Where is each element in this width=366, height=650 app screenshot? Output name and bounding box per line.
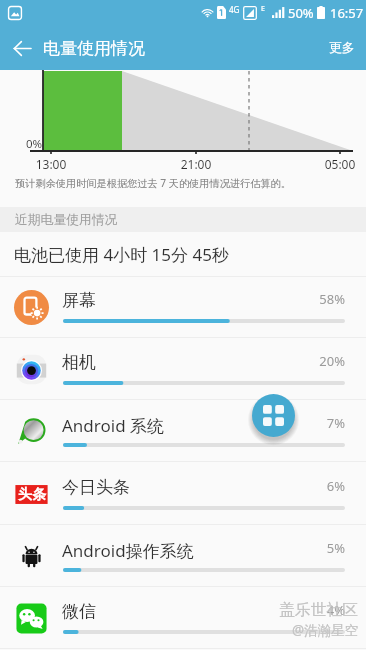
button[interactable]: 微信 (0, 587, 366, 649)
staticText: @浩瀚星空 (292, 621, 359, 639)
staticText: 21:00 (166, 156, 226, 172)
staticText: 4G (229, 4, 240, 15)
staticText: 05:00 (310, 156, 366, 172)
staticText: 5% (300, 539, 345, 557)
button[interactable]: 更多 (315, 26, 366, 70)
staticText: 4% (300, 601, 345, 619)
button[interactable]: 屏幕 (0, 276, 366, 338)
staticText: 58% (300, 290, 345, 308)
button[interactable]: Back (0, 26, 44, 70)
staticText: Android操作系统 (62, 539, 194, 562)
staticText: 微信 (62, 601, 96, 622)
button[interactable]: Apps (252, 394, 295, 437)
staticText: 7% (300, 414, 345, 432)
button[interactable]: Android操作系统 (0, 525, 366, 587)
staticText: 50% (288, 4, 314, 22)
staticText: 20% (300, 352, 345, 370)
staticText: 相机 (62, 352, 96, 373)
button[interactable]: 头条 (0, 463, 366, 525)
staticText: 电量使用情况 (43, 38, 145, 59)
staticText: 更多 (329, 40, 355, 56)
button[interactable]: Android 系统 (0, 400, 366, 462)
staticText: 盖乐世社区 (279, 600, 358, 620)
staticText: Android 系统 (62, 414, 165, 437)
staticText: 16:57 (330, 4, 364, 22)
staticText: E (261, 4, 265, 14)
staticText: 6% (300, 477, 345, 495)
staticText: 近期电量使用情况 (15, 212, 118, 228)
staticText: 0% (26, 136, 43, 152)
staticText: 13:00 (21, 156, 81, 172)
staticText: 今日头条 (62, 477, 130, 498)
button[interactable]: 相机 (0, 338, 366, 400)
staticText: 屏幕 (62, 290, 96, 311)
staticText: 头条 (18, 486, 46, 504)
staticText: 电池已使用 4小时 15分 45秒 (14, 243, 229, 266)
staticText: 预计剩余使用时间是根据您过去 7 天的使用情况进行估算的。 (15, 176, 291, 190)
